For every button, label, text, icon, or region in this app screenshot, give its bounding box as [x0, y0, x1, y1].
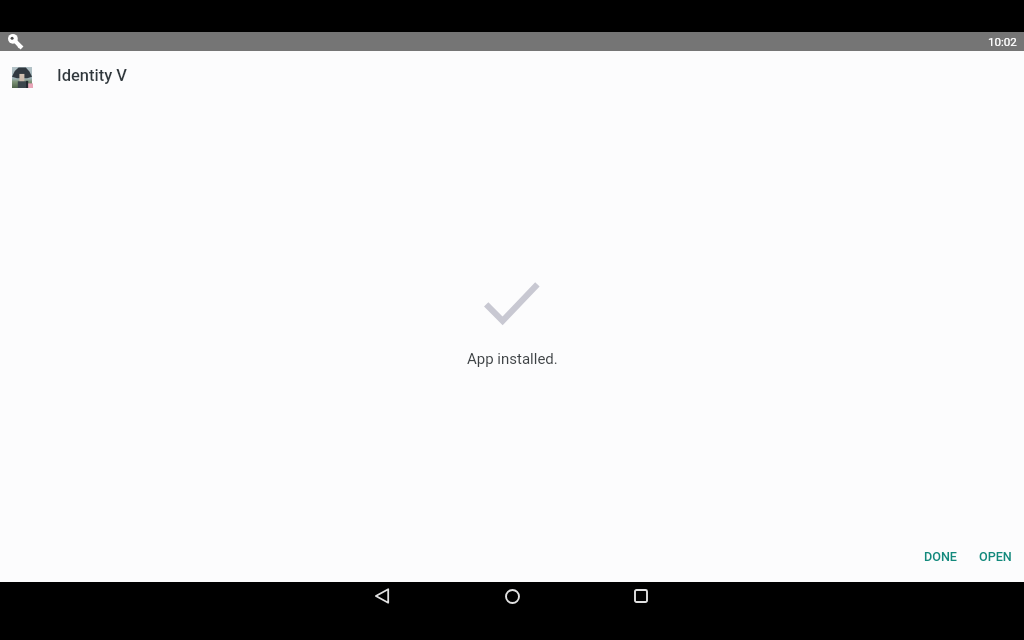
button[interactable]: Recent apps: [617, 582, 665, 610]
button[interactable]: Back: [358, 582, 406, 610]
button[interactable]: DONE: [908, 542, 968, 571]
other: Installation succeeded: [480, 278, 542, 326]
staticText: OPEN: [979, 549, 1012, 564]
staticText: App installed.: [467, 350, 558, 368]
staticText: Identity V: [57, 66, 128, 85]
staticText: 10:02: [988, 35, 1017, 49]
staticText: DONE: [924, 549, 957, 564]
other: VPN active: [0, 32, 26, 51]
button[interactable]: OPEN: [968, 542, 1024, 571]
button[interactable]: Identity V: [0, 57, 300, 95]
button[interactable]: Home: [488, 582, 536, 610]
